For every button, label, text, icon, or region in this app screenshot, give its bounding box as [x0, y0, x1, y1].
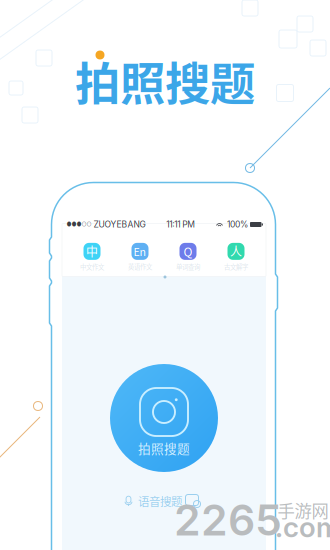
- staticText: 单词查询: [176, 262, 200, 271]
- staticText: 拍照搜题: [138, 439, 190, 457]
- staticText: ZUOYEBANG: [91, 219, 145, 230]
- staticText: 2265: [174, 494, 282, 546]
- staticText: 手游网: [277, 497, 328, 523]
- staticText: 语音搜题: [138, 493, 182, 509]
- staticText: 英语作文: [128, 262, 152, 271]
- staticText: Q: [183, 243, 192, 260]
- staticText: 100%: [227, 219, 248, 230]
- staticText: ●●●: [66, 221, 81, 228]
- button[interactable]: History: [183, 491, 201, 509]
- staticText: 人: [230, 243, 242, 260]
- staticText: 中: [86, 243, 98, 260]
- button[interactable]: 拍照搜题: [110, 364, 218, 472]
- button[interactable]: 人: [212, 243, 260, 271]
- staticText: 古文解字: [224, 262, 248, 271]
- staticText: 中文作文: [80, 262, 104, 271]
- staticText: .com: [275, 510, 330, 544]
- staticText: En: [133, 244, 146, 259]
- staticText: 拍照搜题: [75, 48, 255, 114]
- button[interactable]: 中: [68, 243, 116, 271]
- button[interactable]: En: [116, 243, 164, 271]
- button[interactable]: Q: [164, 243, 212, 271]
- staticText: 11:11 PM: [166, 219, 195, 230]
- staticText: ○○: [81, 221, 91, 228]
